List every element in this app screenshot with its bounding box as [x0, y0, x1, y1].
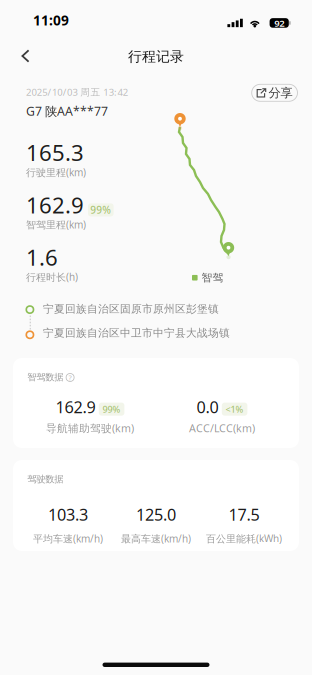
staticText: 行程时长(h)	[26, 270, 78, 284]
staticText: 11:09	[33, 11, 69, 29]
button[interactable]: 分享	[252, 84, 297, 101]
staticText: ACC/LCC(km)	[189, 421, 255, 435]
button[interactable]: Back	[10, 41, 40, 71]
staticText: 行程记录	[128, 48, 184, 65]
staticText: 2025/10/03 周五 13:42	[26, 85, 128, 99]
staticText: 165.3	[26, 137, 84, 167]
staticText: 99%	[103, 403, 121, 415]
staticText: 103.3	[48, 503, 88, 526]
staticText: 162.9	[56, 396, 96, 418]
staticText: ?	[69, 372, 72, 383]
staticText: 125.0	[136, 503, 176, 526]
staticText: 智驾里程(km)	[26, 218, 86, 231]
staticText: 驾驶数据	[27, 473, 63, 485]
staticText: 99%	[90, 203, 111, 217]
staticText: 智驾数据	[27, 371, 63, 383]
staticText: 分享	[269, 85, 293, 101]
staticText: 平均车速(km/h)	[33, 532, 103, 545]
staticText: 最高车速(km/h)	[121, 532, 191, 545]
staticText: 宁夏回族自治区中卫市中宁县大战场镇	[43, 326, 230, 340]
staticText: 162.9	[26, 190, 84, 220]
staticText: G7 陕AA***77	[26, 103, 108, 119]
staticText: 行驶里程(km)	[26, 165, 86, 179]
staticText: <1%	[226, 403, 244, 415]
staticText: 智驾	[202, 271, 224, 284]
staticText: 1.6	[26, 242, 58, 272]
staticText: 17.5	[228, 503, 259, 526]
staticText: 百公里能耗(kWh)	[206, 532, 282, 545]
staticText: 宁夏回族自治区固原市原州区彭堡镇	[43, 302, 219, 316]
staticText: 导航辅助驾驶(km)	[46, 421, 134, 435]
staticText: 92	[274, 16, 284, 29]
staticText: 0.0	[197, 396, 219, 418]
